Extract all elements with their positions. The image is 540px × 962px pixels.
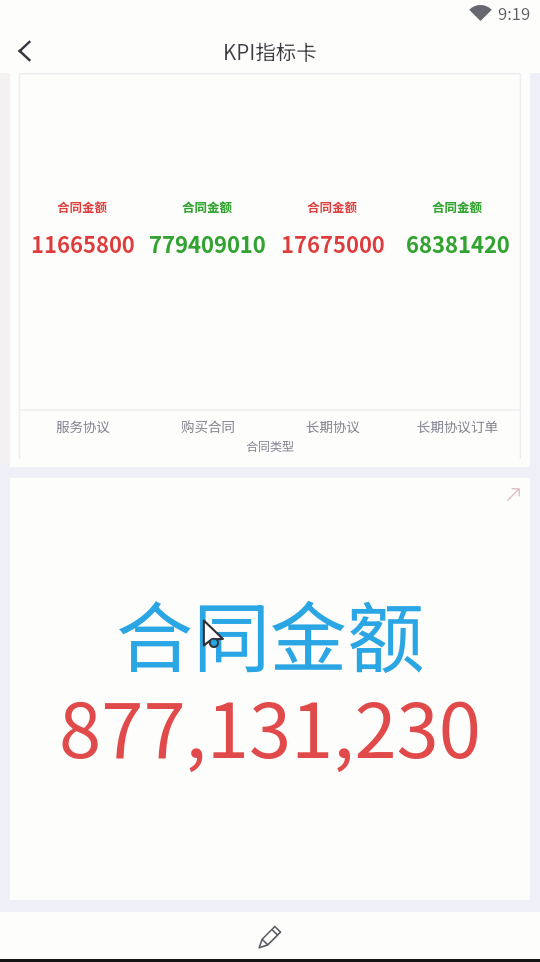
staticText: 合同类型 (246, 437, 295, 454)
staticText: 779409010 (149, 227, 266, 259)
staticText: 合同金额 (57, 197, 108, 215)
staticText: 68381420 (406, 227, 510, 259)
staticText: 合同金额 (432, 197, 483, 215)
staticText: 长期协议订单 (417, 416, 498, 436)
button[interactable]: 合同金额 (10, 73, 530, 467)
staticText: KPI指标卡 (223, 36, 317, 66)
button[interactable]: Expand (501, 482, 525, 506)
staticText: 17675000 (281, 227, 385, 259)
staticText: 11665800 (31, 227, 135, 259)
button[interactable]: Expand (10, 478, 530, 900)
staticText: 购买合同 (181, 416, 235, 436)
staticText: 合同金额 (307, 197, 358, 215)
staticText: 长期协议 (306, 416, 360, 436)
staticText: 合同金额 (116, 577, 424, 688)
button[interactable]: Back (0, 29, 48, 73)
staticText: 9:19 (498, 1, 531, 25)
staticText: 合同金额 (182, 197, 233, 215)
button[interactable]: Edit (247, 913, 293, 959)
staticText: 877,131,230 (59, 670, 481, 780)
staticText: 服务协议 (56, 416, 110, 436)
